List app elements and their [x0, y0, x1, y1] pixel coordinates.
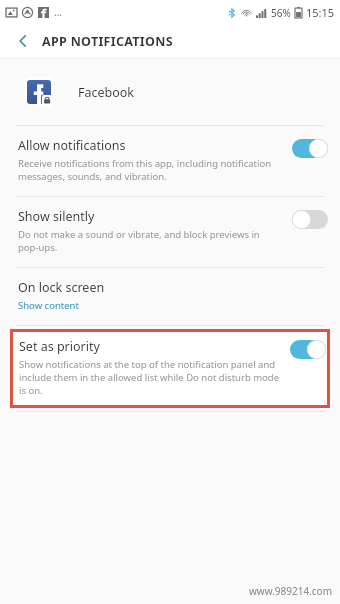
- staticText: Show content: [18, 299, 79, 312]
- staticText: 15:15: [306, 5, 335, 20]
- staticText: Do not make a sound or vibrate, and bloc…: [18, 228, 282, 254]
- staticText: 56%: [271, 6, 291, 20]
- staticText: Set as priority: [19, 338, 100, 355]
- button[interactable]: On lock screen: [0, 268, 340, 325]
- staticText: APP NOTIFICATIONS: [42, 33, 173, 50]
- button[interactable]: Toggle off: [292, 210, 328, 229]
- staticText: Facebook: [78, 84, 135, 101]
- button[interactable]: Show silently: [0, 197, 340, 267]
- staticText: www.989214.com: [248, 584, 332, 598]
- staticText: Show notifications at the top of the not…: [19, 358, 282, 397]
- staticText: On lock screen: [18, 279, 105, 296]
- staticText: Allow notifications: [18, 137, 126, 154]
- button[interactable]: Allow notifications: [0, 126, 340, 196]
- staticText: …: [54, 5, 62, 19]
- button[interactable]: Facebook: [0, 59, 340, 125]
- staticText: Receive notifications from this app, inc…: [18, 157, 282, 183]
- button[interactable]: Toggle on: [290, 340, 326, 359]
- staticText: Show silently: [18, 208, 95, 225]
- button[interactable]: Back: [8, 26, 38, 56]
- button[interactable]: Set as priority: [10, 329, 330, 408]
- button[interactable]: Toggle on: [292, 139, 328, 158]
